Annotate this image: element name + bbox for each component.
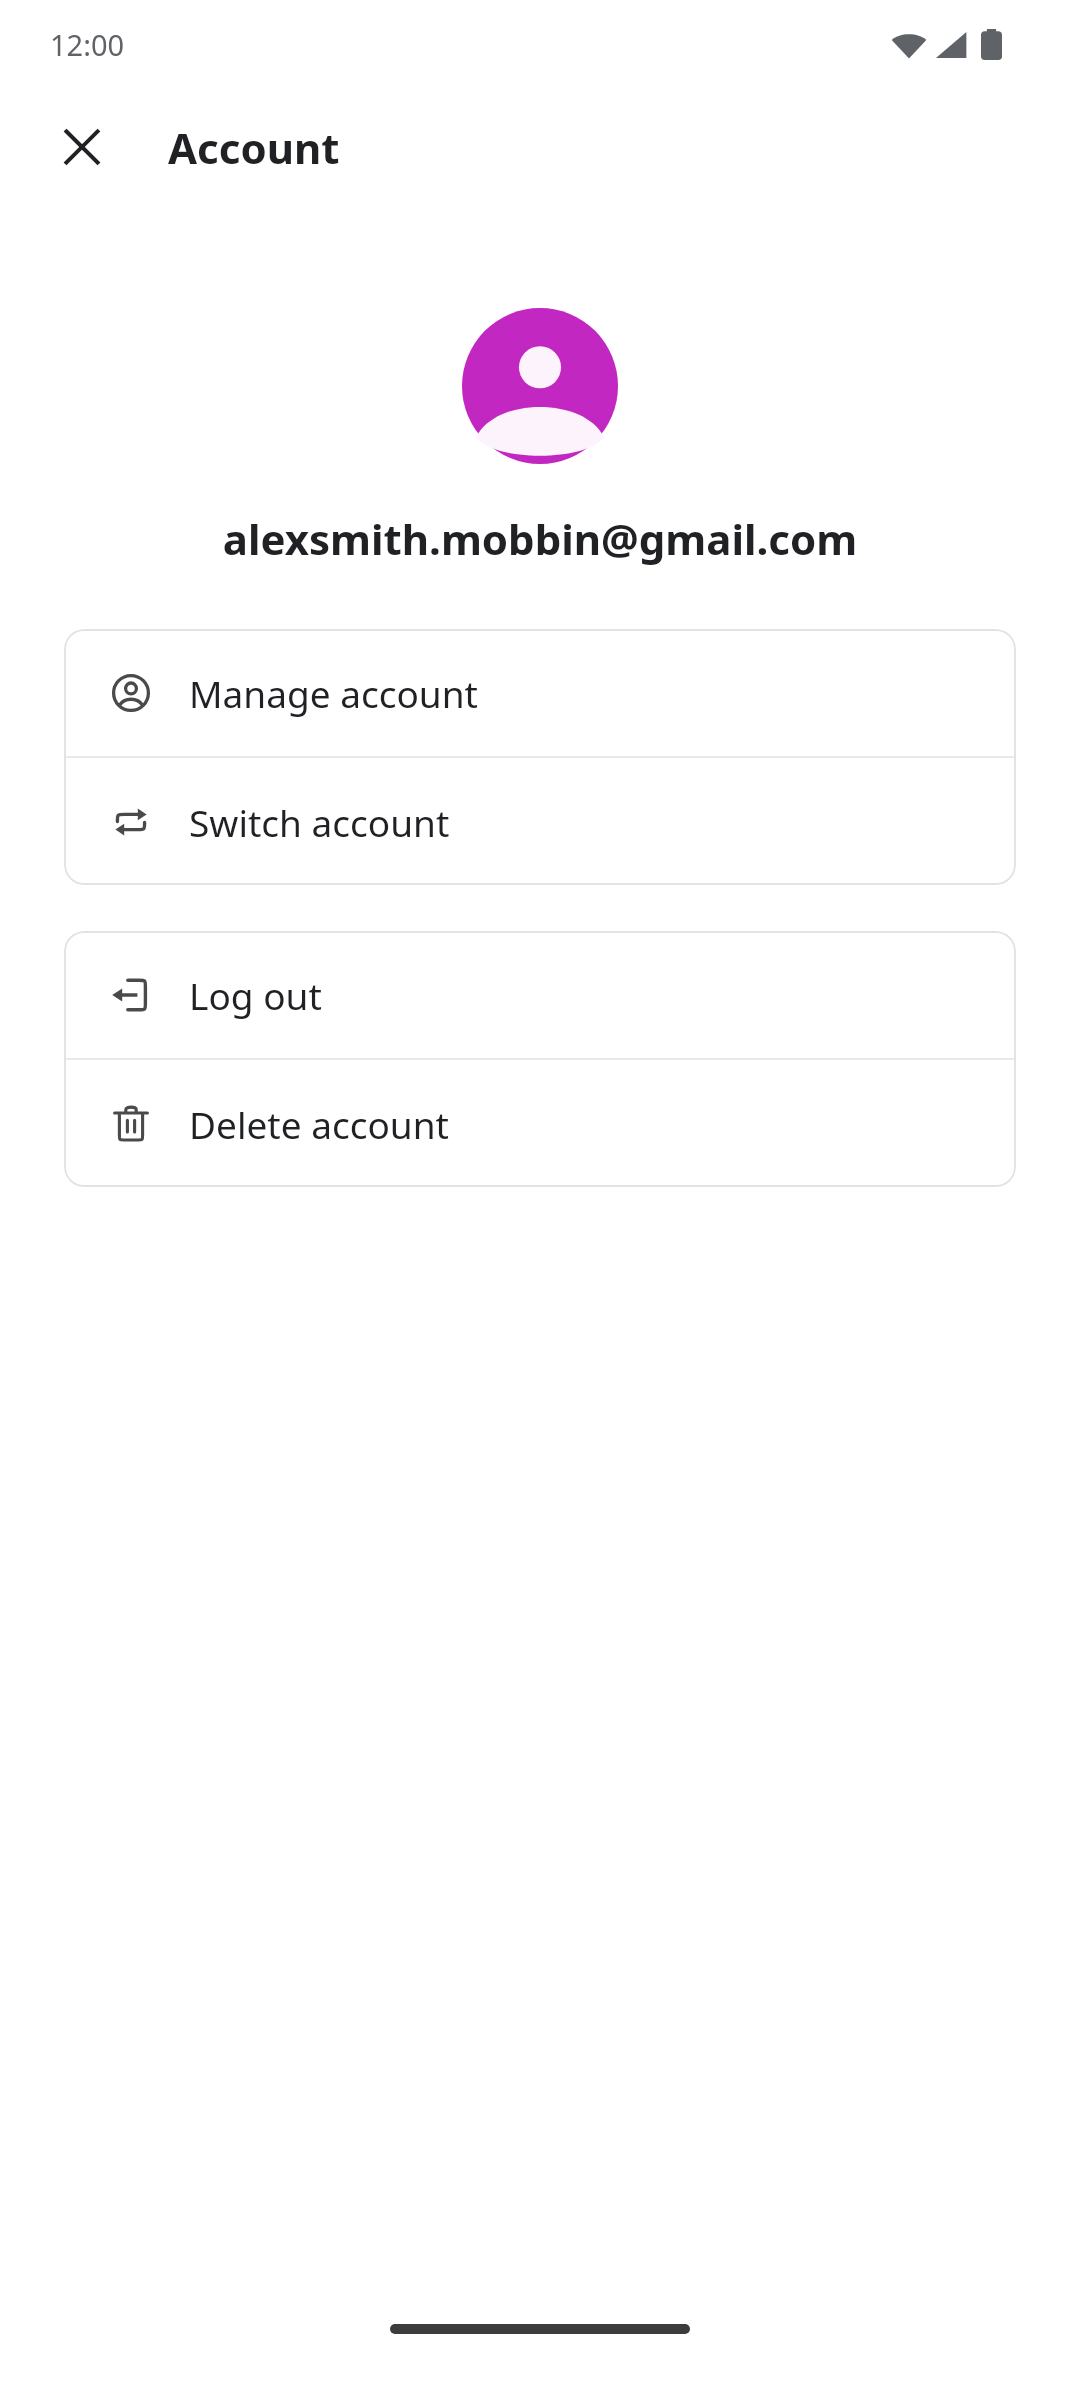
staticText: 12:00	[50, 25, 125, 64]
button[interactable]: Switch account	[64, 758, 1016, 885]
staticText: Delete account	[189, 1099, 449, 1149]
staticText: Log out	[189, 970, 322, 1020]
staticText: alexsmith.mobbin@gmail.com	[30, 510, 1050, 567]
button[interactable]: Manage account	[64, 629, 1016, 756]
button[interactable]: Delete account	[64, 1060, 1016, 1187]
staticText: Manage account	[189, 668, 478, 718]
staticText: Account	[168, 119, 340, 176]
staticText: Switch account	[189, 797, 450, 847]
button[interactable]: Log out	[64, 931, 1016, 1058]
button[interactable]: Close	[34, 99, 130, 195]
